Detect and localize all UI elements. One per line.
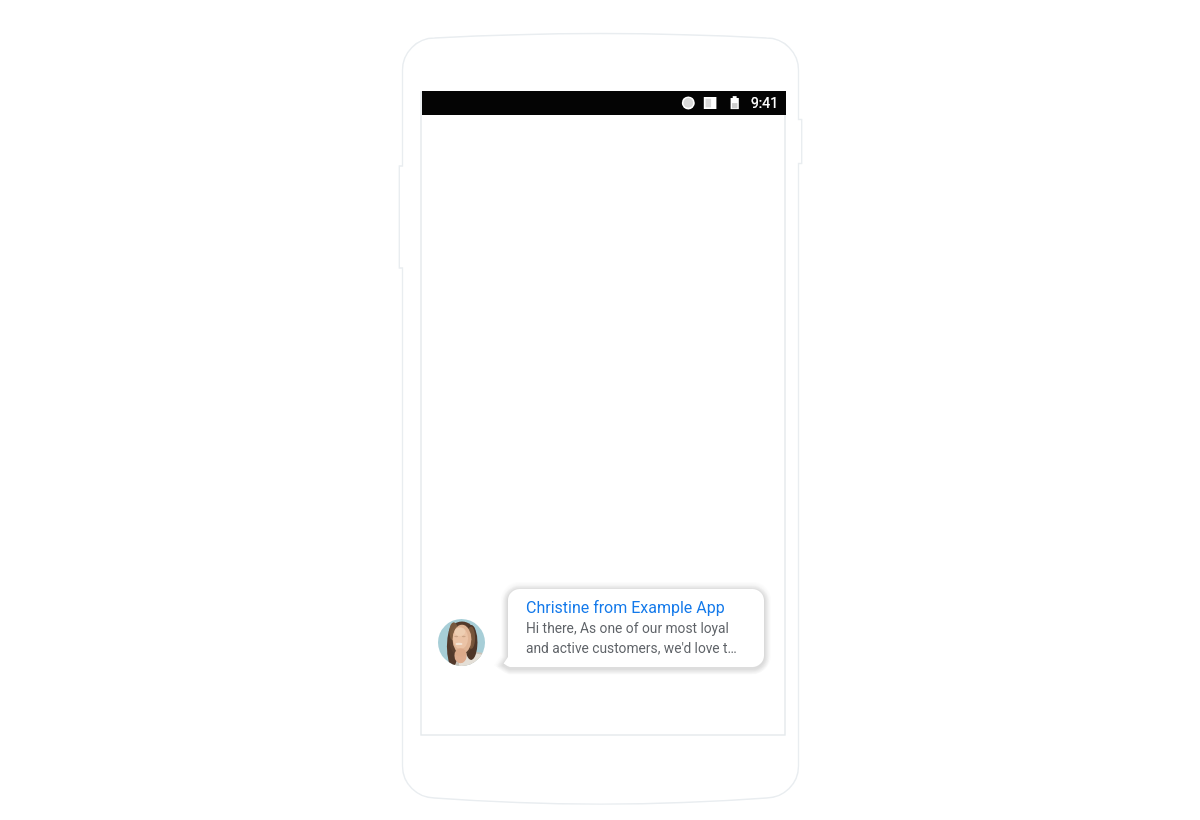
other: Status bar	[422, 91, 786, 115]
staticText: 9:41	[751, 95, 778, 111]
staticText: Christine from Example App	[526, 598, 725, 617]
button[interactable]: Christine profile photo	[438, 619, 485, 666]
button[interactable]: Christine from Example App	[503, 589, 764, 667]
staticText: Hi there, As one of our most loyal and a…	[526, 620, 737, 657]
